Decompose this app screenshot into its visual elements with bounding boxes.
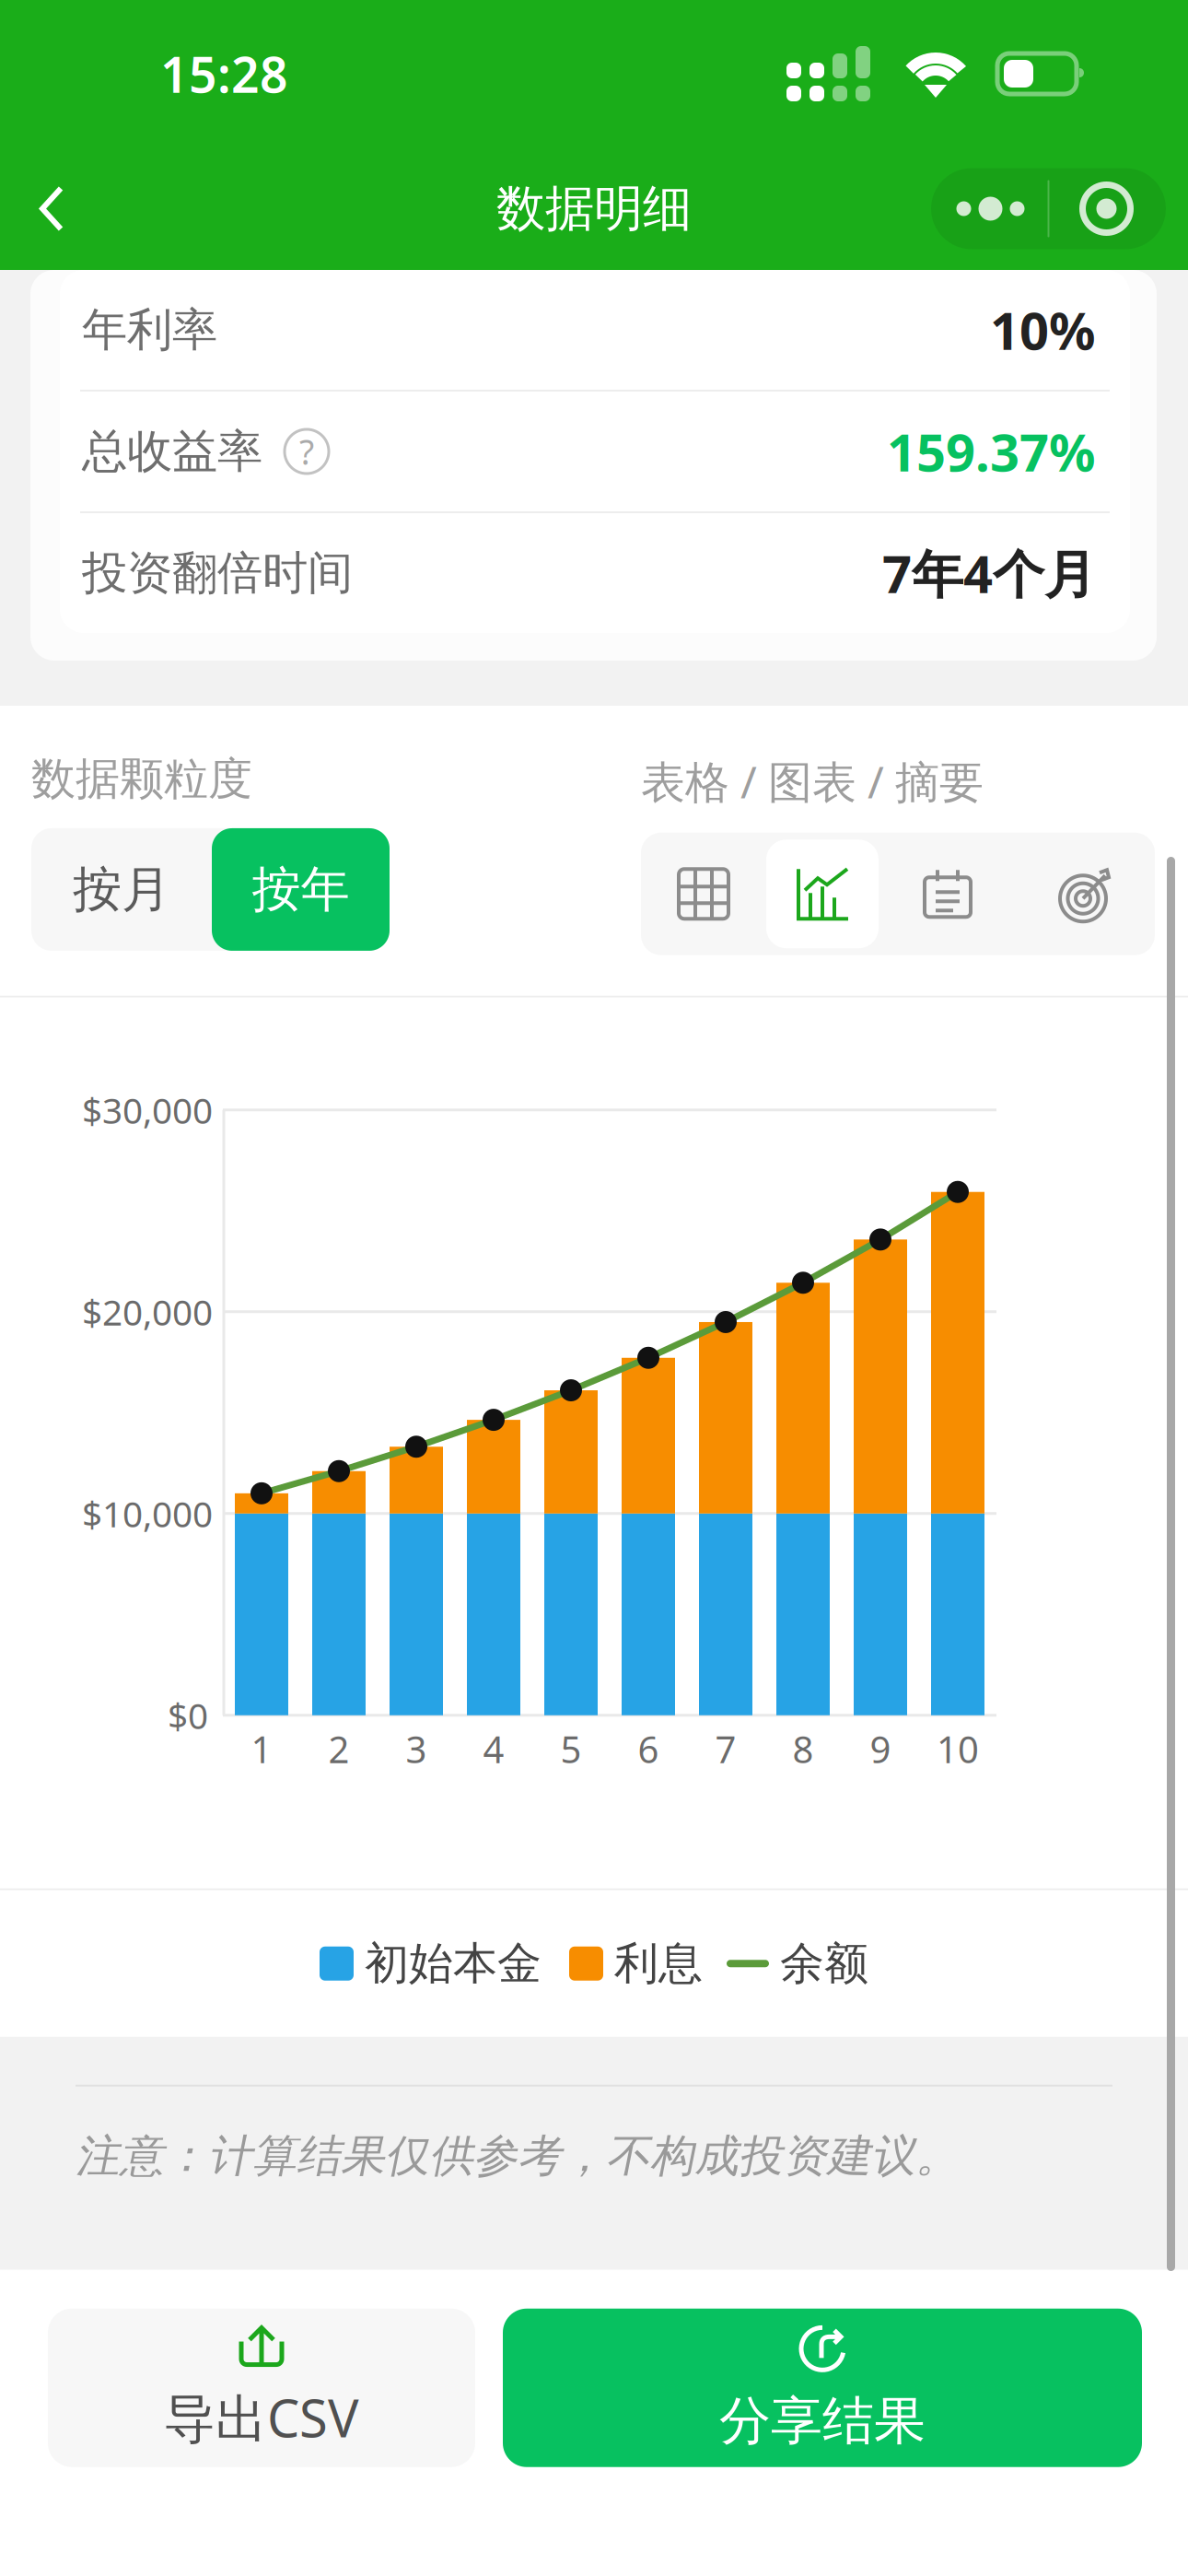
staticText: 15:28 [160,41,288,106]
staticText: ? [299,429,314,474]
staticText: 1 [251,1724,272,1773]
staticText: 总收益率 [82,424,262,479]
staticText: $20,000 [82,1288,213,1335]
button[interactable]: 分享结果 [503,2309,1142,2467]
staticText: 数据颗粒度 [31,752,252,806]
staticText: 3 [406,1724,427,1773]
staticText: $0 [168,1692,208,1739]
staticText: 10% [990,296,1096,364]
staticText: 4 [483,1724,504,1773]
button[interactable]: Chart view [766,833,879,955]
staticText: 7年4个月 [882,539,1096,607]
staticText: 初始本金 [365,1936,542,1991]
staticText: 投资翻倍时间 [82,545,353,601]
staticText: 159.37% [887,417,1096,486]
staticText: $10,000 [82,1490,213,1537]
staticText: 7 [715,1724,736,1773]
staticText: 5 [560,1724,582,1773]
staticText: 年利率 [82,302,217,358]
staticText: 表格 / 图表 / 摘要 [641,752,984,810]
staticText: 分享结果 [719,2389,926,2453]
button[interactable]: Summary view [879,833,1017,955]
staticText: 按月 [73,859,170,920]
button[interactable]: Goal view [1017,833,1155,955]
staticText: 9 [870,1724,891,1773]
staticText: 数据明细 [496,178,692,239]
button[interactable]: More [933,168,1048,249]
staticText: 余额 [780,1936,868,1991]
button[interactable]: 导出CSV [48,2309,475,2467]
staticText: 8 [792,1724,814,1773]
staticText: 10 [937,1724,979,1773]
staticText: 利息 [614,1936,703,1991]
button[interactable]: Table view [641,833,766,955]
staticText: 按年 [252,859,349,920]
button[interactable]: Back [0,147,103,270]
staticText: 6 [638,1724,659,1773]
staticText: 注意：计算结果仅供参考，不构成投资建议。 [76,2129,960,2183]
button[interactable]: 按月 [31,828,212,951]
button[interactable]: 按年 [212,828,390,951]
staticText: 2 [328,1724,349,1773]
button[interactable]: Close mini program [1049,168,1164,249]
staticText: $30,000 [82,1086,213,1134]
staticText: 导出CSV [164,2383,359,2452]
